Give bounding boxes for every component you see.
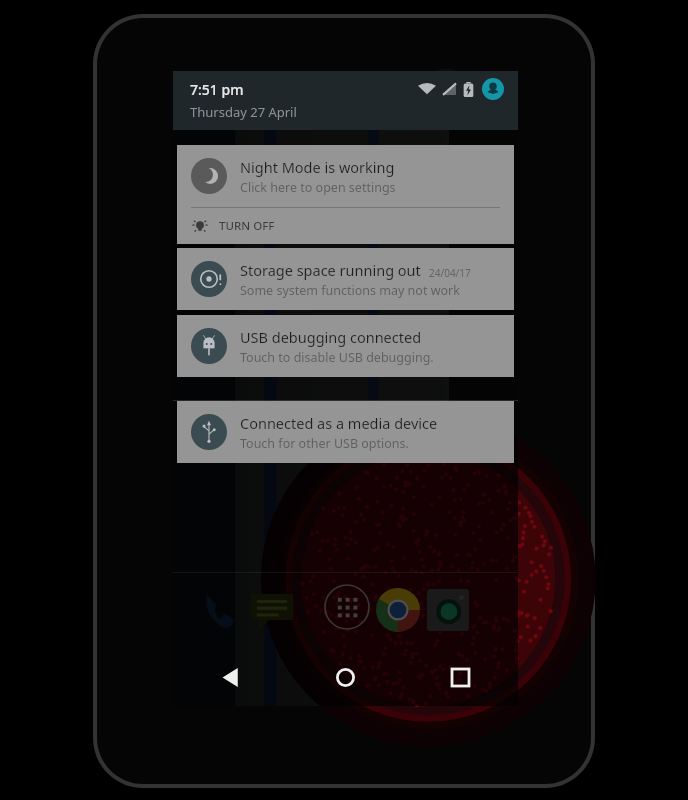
staticText: Storage space running out xyxy=(240,260,421,280)
staticText: Connected as a media device xyxy=(240,413,438,433)
staticText: 24/04/17 xyxy=(429,266,471,280)
button[interactable]: Apps xyxy=(324,584,370,630)
staticText: TURN OFF xyxy=(219,218,275,234)
button[interactable]: Messaging xyxy=(251,589,293,631)
staticText: Thursday 27 April xyxy=(190,103,297,121)
button[interactable]: Chrome xyxy=(376,588,420,632)
button[interactable]: Recent apps xyxy=(403,648,518,706)
button[interactable]: User account xyxy=(482,78,504,100)
staticText: 7:51 pm xyxy=(190,80,244,99)
button[interactable]: Storage space running out xyxy=(177,248,514,310)
button[interactable]: USB debugging connected xyxy=(177,315,514,377)
button[interactable]: Night Mode is working xyxy=(177,145,514,244)
staticText: Some system functions may not work xyxy=(240,282,460,299)
button[interactable]: Back xyxy=(173,648,288,706)
button[interactable]: Phone xyxy=(197,586,243,632)
staticText: Night Mode is working xyxy=(240,157,395,177)
staticText: Click here to open settings xyxy=(240,179,396,196)
staticText: Touch for other USB options. xyxy=(240,435,409,452)
button[interactable]: Connected as a media device xyxy=(177,401,514,463)
button[interactable]: Camera xyxy=(427,589,469,631)
button[interactable]: Home xyxy=(288,648,403,706)
staticText: Touch to disable USB debugging. xyxy=(240,349,434,366)
button[interactable]: TURN OFF xyxy=(177,208,514,244)
staticText: USB debugging connected xyxy=(240,327,422,347)
